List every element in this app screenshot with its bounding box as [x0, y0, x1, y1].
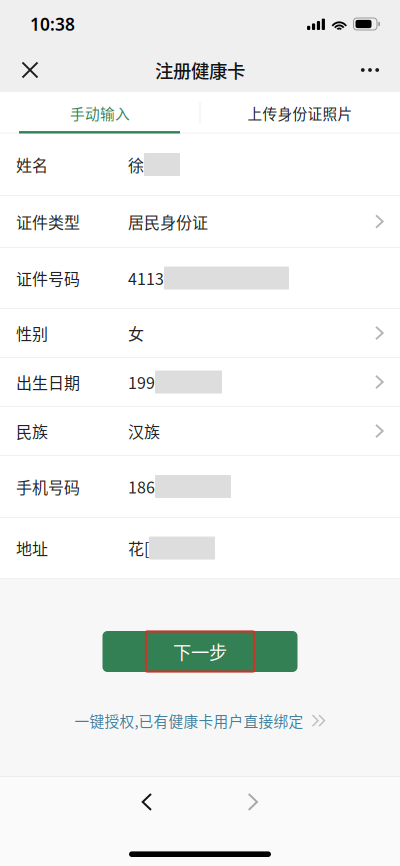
button[interactable]: 性别	[0, 309, 400, 358]
staticText: 一键授权,已有健康卡用户直接绑定	[74, 710, 303, 731]
button[interactable]: 姓名	[0, 134, 400, 196]
staticText: 地址	[16, 536, 48, 560]
staticText: 注册健康卡	[155, 57, 245, 83]
staticText: 证件号码	[16, 266, 80, 290]
button[interactable]: Forward	[226, 783, 280, 821]
staticText: 汉族	[128, 419, 160, 443]
button[interactable]: 一键授权,已有健康卡用户直接绑定	[74, 710, 325, 731]
staticText: 姓名	[16, 153, 48, 176]
staticText: 199	[128, 370, 155, 394]
staticText: 徐	[128, 153, 144, 176]
staticText: 证件类型	[16, 210, 80, 233]
staticText: 186	[128, 475, 155, 498]
staticText: 上传身份证照片	[247, 102, 352, 124]
staticText: 手动输入	[70, 102, 130, 124]
button[interactable]: 下一步	[102, 631, 297, 672]
staticText: 下一步	[173, 638, 227, 665]
staticText: 女	[128, 321, 144, 345]
staticText: 居民身份证	[128, 210, 208, 233]
button[interactable]: 出生日期	[0, 358, 400, 407]
button[interactable]: 上传身份证照片	[200, 92, 400, 133]
staticText: 4113	[128, 266, 164, 290]
button[interactable]: Back	[120, 783, 174, 821]
button[interactable]: 手动输入	[0, 92, 200, 133]
button[interactable]: More	[341, 48, 399, 92]
button[interactable]: Close	[1, 48, 59, 92]
button[interactable]: 地址	[0, 518, 400, 579]
button[interactable]: 手机号码	[0, 456, 400, 518]
button[interactable]: 证件类型	[0, 196, 400, 248]
staticText: 民族	[16, 419, 48, 443]
button[interactable]: 证件号码	[0, 248, 400, 309]
button[interactable]: 民族	[0, 407, 400, 456]
staticText: 性别	[16, 321, 48, 345]
staticText: 出生日期	[16, 370, 80, 394]
staticText: 手机号码	[16, 475, 80, 498]
staticText: 花[	[128, 536, 149, 560]
staticText: 10:38	[30, 12, 75, 35]
